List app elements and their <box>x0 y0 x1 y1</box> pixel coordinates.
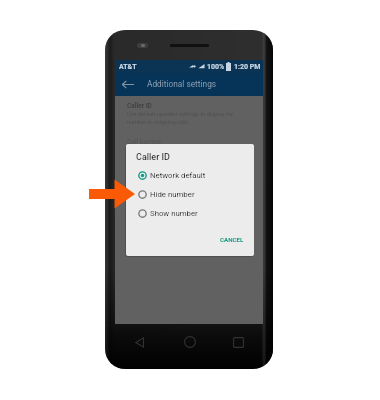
button[interactable]: Home <box>165 324 214 360</box>
button[interactable]: Recent apps <box>214 324 263 360</box>
button[interactable]: Hide number <box>126 185 254 204</box>
staticText: Caller ID <box>127 102 152 110</box>
staticText: Call barring <box>127 138 161 146</box>
button[interactable]: Back <box>115 324 165 360</box>
button[interactable]: Navigate up <box>120 76 136 94</box>
staticText: Show number <box>150 209 198 218</box>
button[interactable]: Network default <box>126 166 254 185</box>
staticText: Hide number <box>150 190 195 199</box>
staticText: CANCEL <box>220 236 244 243</box>
staticText: 1:20 PM <box>234 63 261 71</box>
staticText: 100% <box>207 63 225 71</box>
button[interactable]: Show number <box>126 204 254 223</box>
staticText: Caller ID <box>136 152 170 163</box>
staticText: Use default operator settings to display… <box>127 111 234 125</box>
staticText: Network default <box>150 171 206 180</box>
staticText: Additional settings <box>147 79 217 89</box>
staticText: AT&T <box>119 63 137 71</box>
button[interactable]: CANCEL <box>216 233 248 246</box>
